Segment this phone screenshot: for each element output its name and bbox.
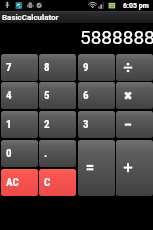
- button[interactable]: 7: [1, 54, 38, 81]
- button[interactable]: 9: [78, 54, 115, 81]
- staticText: 9: [83, 61, 89, 74]
- button[interactable]: 2: [39, 111, 76, 138]
- button[interactable]: 3: [78, 111, 115, 138]
- button[interactable]: AC: [1, 169, 38, 196]
- staticText: 0: [6, 147, 12, 160]
- staticText: 6:05 pm: [123, 2, 149, 10]
- staticText: BasicCalculator: [2, 13, 59, 22]
- button[interactable]: Multiply: [116, 82, 153, 109]
- button[interactable]: 6: [78, 82, 115, 109]
- staticText: C: [44, 176, 51, 189]
- staticText: 4: [6, 89, 12, 102]
- staticText: .: [44, 147, 48, 160]
- button[interactable]: .: [39, 140, 76, 167]
- staticText: AC: [6, 176, 19, 189]
- staticText: 3: [83, 118, 89, 131]
- button[interactable]: 8: [39, 54, 76, 81]
- staticText: 6: [83, 89, 89, 102]
- staticText: 7: [6, 61, 12, 74]
- staticText: 2: [44, 118, 50, 131]
- button[interactable]: Equals: [78, 140, 115, 196]
- button[interactable]: 5: [39, 82, 76, 109]
- staticText: 8: [44, 61, 50, 74]
- staticText: 1: [6, 118, 12, 131]
- button[interactable]: C: [39, 169, 76, 196]
- button[interactable]: Divide: [116, 54, 153, 81]
- staticText: 5: [44, 89, 50, 102]
- button[interactable]: Add: [116, 140, 153, 196]
- button[interactable]: 0: [1, 140, 38, 167]
- staticText: 5888888: [80, 26, 153, 48]
- button[interactable]: Subtract: [116, 111, 153, 138]
- button[interactable]: 4: [1, 82, 38, 109]
- button[interactable]: 1: [1, 111, 38, 138]
